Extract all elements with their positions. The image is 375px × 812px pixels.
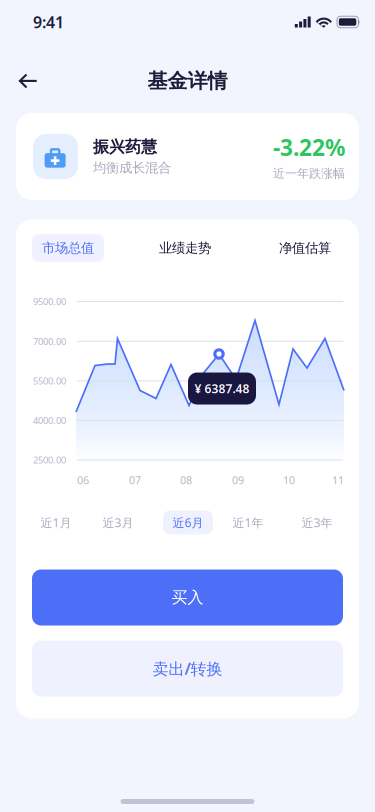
staticText: 卖出/转换 xyxy=(152,658,222,679)
button[interactable]: 业绩走势 xyxy=(149,234,221,261)
staticText: 08 xyxy=(180,473,192,487)
staticText: 4000.00 xyxy=(33,414,66,427)
staticText: 净值估算 xyxy=(279,240,331,256)
staticText: 近一年跌涨幅 xyxy=(273,166,345,181)
staticText: 振兴药慧 xyxy=(93,137,157,157)
staticText: 近3月 xyxy=(102,514,133,530)
staticText: 5500.00 xyxy=(33,375,66,387)
staticText: 近1年 xyxy=(232,514,263,530)
staticText: 市场总值 xyxy=(42,240,94,256)
staticText: 近3年 xyxy=(301,514,332,530)
staticText: 近6月 xyxy=(172,514,203,530)
staticText: -3.22% xyxy=(273,132,345,162)
button[interactable]: 近6月 xyxy=(163,510,213,534)
staticText: 07 xyxy=(129,473,141,487)
staticText: 7000.00 xyxy=(33,335,66,347)
button[interactable]: 买入 xyxy=(32,569,343,625)
button[interactable]: 近1年 xyxy=(223,510,273,534)
button[interactable]: 近3年 xyxy=(292,510,342,534)
staticText: ¥ 6387.48 xyxy=(194,380,249,396)
staticText: 10 xyxy=(283,473,295,487)
staticText: 均衡成长混合 xyxy=(93,160,171,176)
button[interactable]: 近3月 xyxy=(93,510,143,534)
button[interactable]: 近1月 xyxy=(31,510,81,534)
button[interactable]: 净值估算 xyxy=(269,234,341,261)
staticText: 09 xyxy=(232,473,244,487)
staticText: 11 xyxy=(332,473,344,487)
staticText: 买入 xyxy=(171,588,203,607)
staticText: 9500.00 xyxy=(33,295,66,308)
staticText: 2500.00 xyxy=(33,454,66,466)
button[interactable]: 市场总值 xyxy=(32,234,104,262)
staticText: 9:41 xyxy=(33,11,64,33)
button[interactable]: 卖出/转换 xyxy=(32,640,343,696)
staticText: 业绩走势 xyxy=(159,240,211,256)
button[interactable]: Back xyxy=(8,61,48,101)
staticText: 基金详情 xyxy=(147,69,227,93)
staticText: 06 xyxy=(77,473,89,487)
staticText: 近1月 xyxy=(40,514,71,530)
